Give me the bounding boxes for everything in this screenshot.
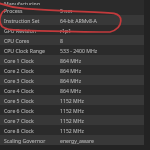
staticText: Instruction Set xyxy=(4,17,40,24)
staticText: 1152 MHz xyxy=(60,107,84,114)
staticText: Core 3 Clock xyxy=(4,77,34,84)
staticText: Manufacturing xyxy=(4,0,40,5)
button[interactable]: Process xyxy=(0,5,144,15)
button[interactable]: Core 2 Clock xyxy=(0,65,144,75)
staticText: Core 6 Clock xyxy=(4,107,34,114)
staticText: Core 5 Clock xyxy=(4,97,34,104)
button[interactable]: Scaling Governor xyxy=(0,135,144,145)
staticText: Core 7 Clock xyxy=(4,117,34,124)
staticText: 1152 MHz xyxy=(60,127,84,134)
staticText: 1152 MHz xyxy=(60,97,84,104)
staticText: 864 MHz xyxy=(60,57,82,64)
staticText: 1152 MHz xyxy=(60,117,84,124)
staticText: Core 1 Clock xyxy=(4,57,34,64)
button[interactable]: Core 6 Clock xyxy=(0,105,144,115)
button[interactable]: CPU Cores xyxy=(0,35,144,45)
button[interactable]: Core 8 Clock xyxy=(0,125,144,135)
button[interactable]: Manufacturing xyxy=(0,0,144,5)
staticText: 533 - 2400 MHz xyxy=(60,47,98,54)
staticText: 864 MHz xyxy=(60,77,82,84)
staticText: energy_aware xyxy=(60,137,94,144)
staticText: 8 xyxy=(60,37,63,44)
staticText: Core 4 Clock xyxy=(4,87,34,94)
button[interactable]: Instruction Set xyxy=(0,15,144,25)
button[interactable]: Core 7 Clock xyxy=(0,115,144,125)
staticText: r1p1 xyxy=(60,27,72,34)
button[interactable]: GPU Revision xyxy=(0,25,144,35)
staticText: Core 8 Clock xyxy=(4,127,34,134)
staticText: 864 MHz xyxy=(60,67,82,74)
staticText: Scaling Governor xyxy=(4,137,46,144)
staticText: CPU Clock Range xyxy=(4,47,46,54)
button[interactable]: CPU Clock Range xyxy=(0,45,144,55)
staticText: 864 MHz xyxy=(60,87,82,94)
staticText: 5 nm xyxy=(60,7,73,14)
staticText: GPU Revision xyxy=(4,27,36,34)
button[interactable]: Core 1 Clock xyxy=(0,55,144,65)
button[interactable]: Core 5 Clock xyxy=(0,95,144,105)
staticText: Core 2 Clock xyxy=(4,67,34,74)
staticText: 64-bit ARMv8-A xyxy=(60,17,97,24)
staticText: CPU Cores xyxy=(4,37,30,44)
button[interactable]: Core 4 Clock xyxy=(0,85,144,95)
button[interactable]: Core 3 Clock xyxy=(0,75,144,85)
staticText: Process xyxy=(4,7,23,14)
